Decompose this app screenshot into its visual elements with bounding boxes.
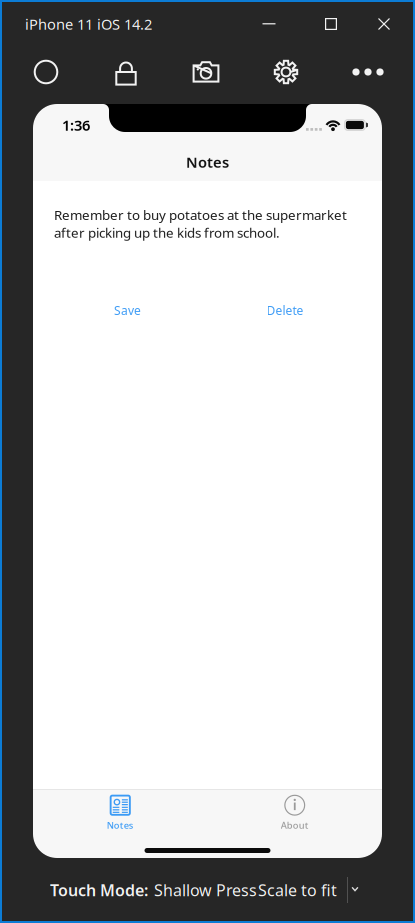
staticText: iPhone 11 iOS 14.2 xyxy=(25,14,152,34)
staticText: Delete xyxy=(266,302,303,318)
button[interactable]: Scale options xyxy=(343,877,367,901)
button[interactable]: Lock xyxy=(98,48,154,96)
button[interactable]: Home xyxy=(18,48,74,96)
button[interactable]: Maximize xyxy=(308,4,354,44)
button[interactable]: More options xyxy=(340,48,396,96)
button[interactable]: Settings xyxy=(258,48,314,96)
staticText: Save xyxy=(114,302,141,318)
staticText: Notes xyxy=(186,152,229,172)
button[interactable]: Screenshot xyxy=(178,48,234,96)
button[interactable]: Delete xyxy=(227,294,343,326)
staticText: Remember to buy potatoes at the supermar… xyxy=(54,206,347,241)
staticText: Shallow Press xyxy=(154,879,257,901)
button[interactable]: Save xyxy=(69,294,185,326)
staticText: About xyxy=(281,819,309,831)
button[interactable]: Notes xyxy=(33,792,207,834)
button[interactable]: Minimize xyxy=(246,4,292,44)
button[interactable]: Close xyxy=(361,4,407,44)
staticText: Touch Mode: xyxy=(50,879,148,901)
staticText: Scale to fit xyxy=(258,879,337,901)
staticText: 1:36 xyxy=(62,115,90,135)
button[interactable]: About xyxy=(207,792,382,834)
staticText: Notes xyxy=(107,819,134,831)
